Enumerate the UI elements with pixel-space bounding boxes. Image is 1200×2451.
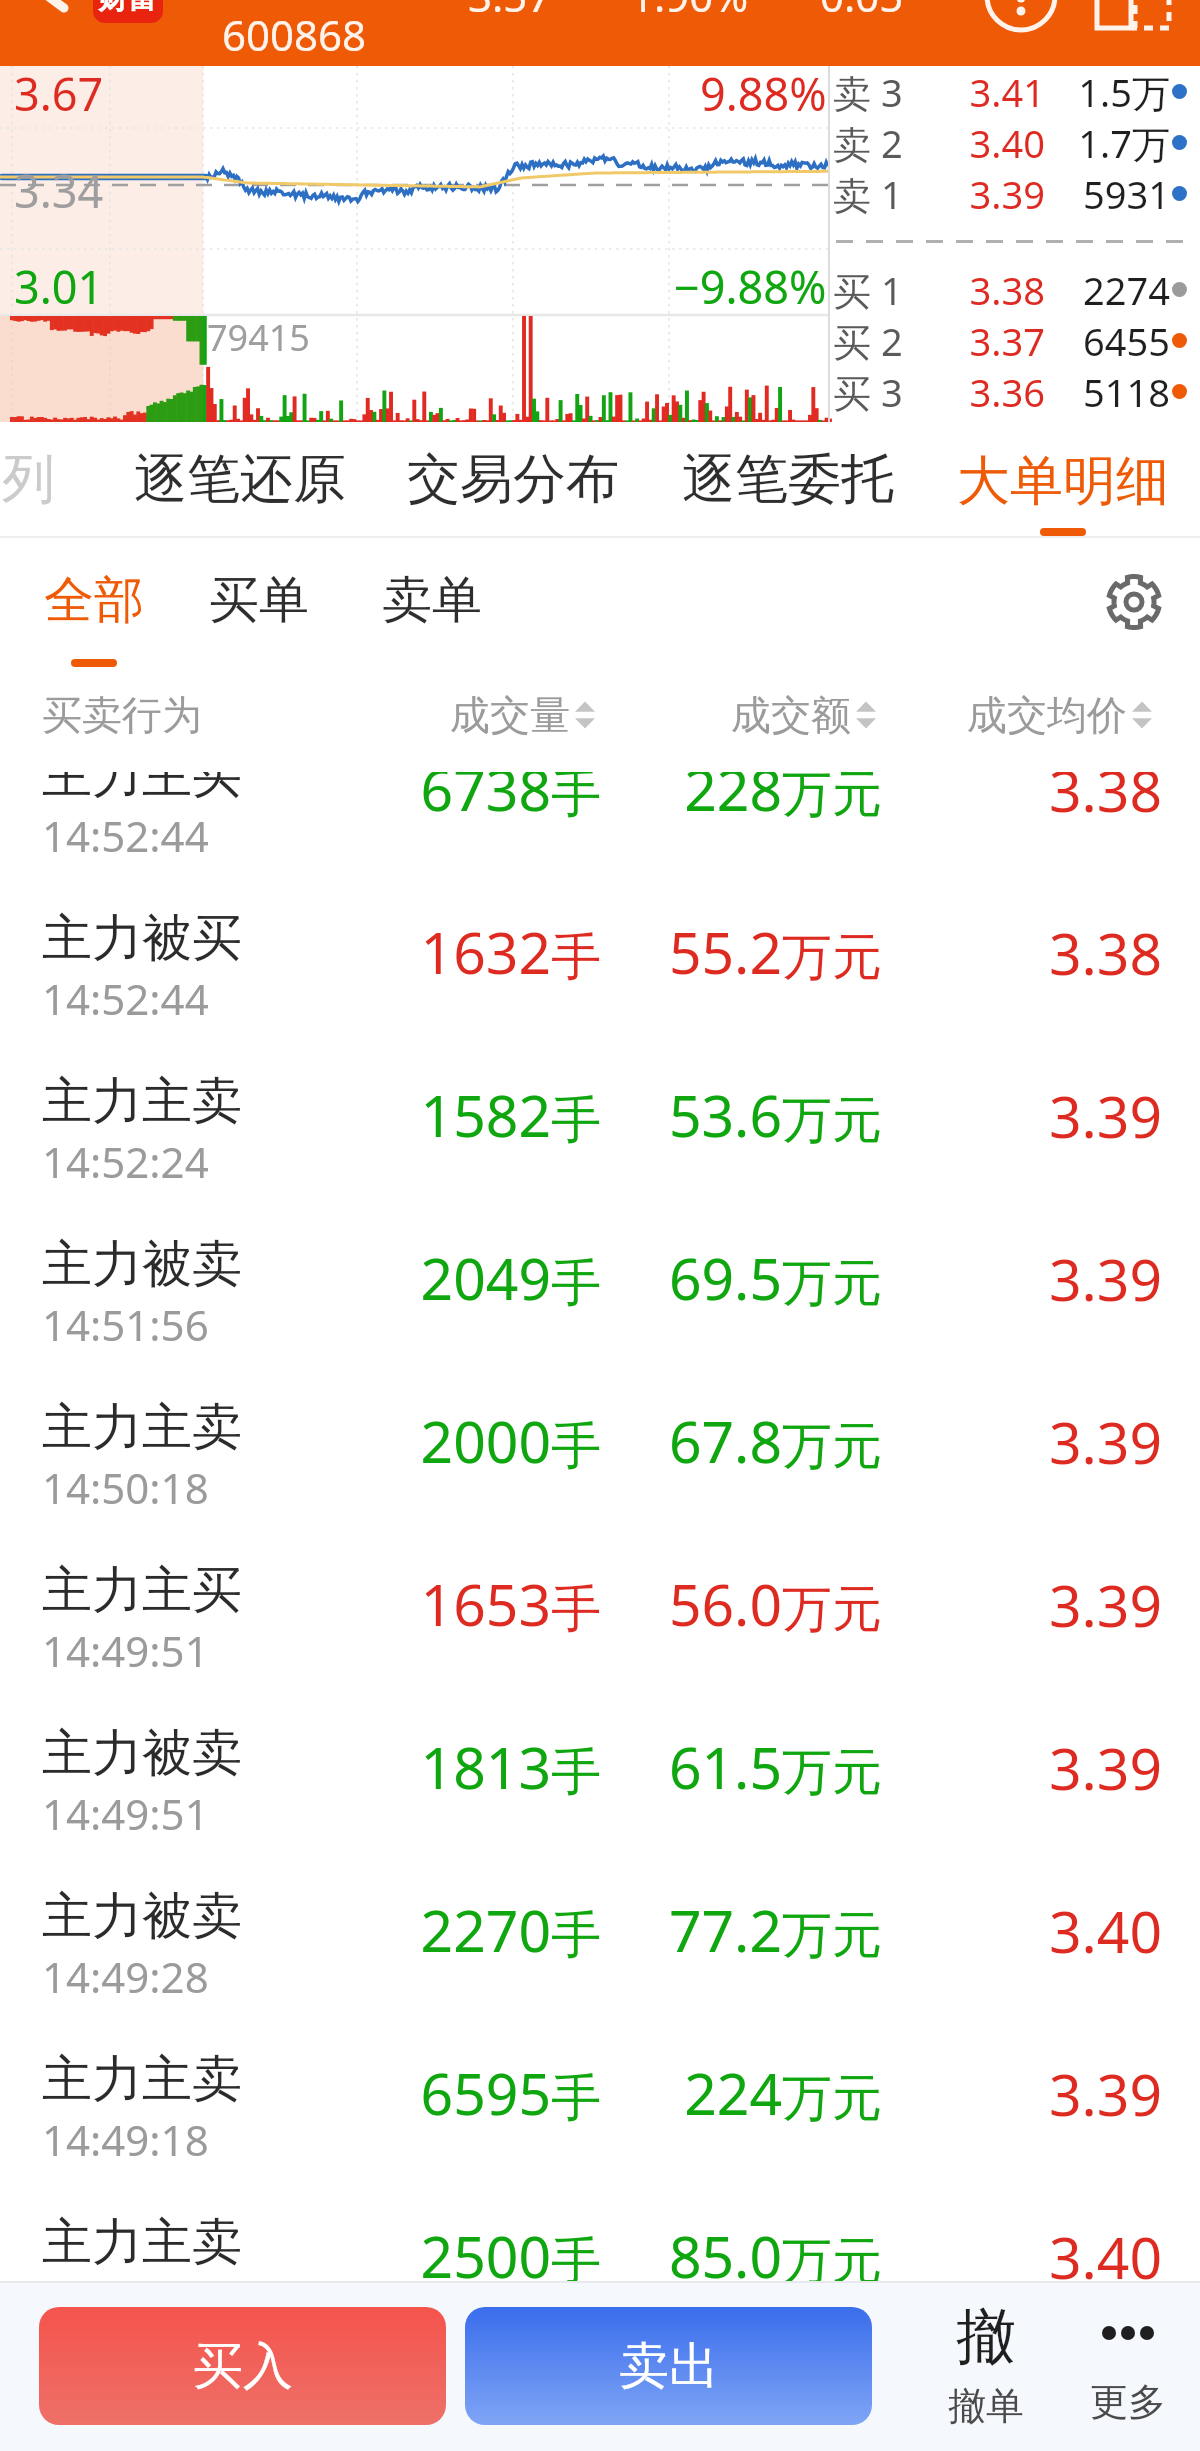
- staticText: 1813手: [341, 1728, 601, 1806]
- button[interactable]: 成交量: [450, 680, 595, 750]
- staticText: 3.57: [468, 0, 552, 24]
- staticText: 3.40: [962, 1892, 1162, 1970]
- staticText: 53.6万元: [622, 1076, 882, 1154]
- staticText: 买入: [193, 2335, 293, 2398]
- button[interactable]: 买入: [39, 2307, 446, 2425]
- button[interactable]: 主力主买: [0, 772, 1200, 882]
- staticText: 买 2: [833, 315, 925, 366]
- staticText: 更多: [1090, 2378, 1166, 2426]
- button[interactable]: Back: [30, 0, 72, 20]
- button[interactable]: 逐笔还原: [103, 422, 377, 538]
- button[interactable]: 主力被买: [0, 882, 1200, 1045]
- staticText: 3.01: [14, 256, 104, 317]
- staticText: 卖 2: [833, 117, 925, 168]
- button[interactable]: Settings: [1102, 570, 1166, 634]
- button[interactable]: 卖 2: [828, 117, 1200, 168]
- staticText: 14:49:51: [42, 1622, 209, 1679]
- staticText: 撤: [956, 2299, 1016, 2375]
- staticText: 撤单: [948, 2382, 1024, 2430]
- staticText: 全部: [44, 569, 144, 632]
- staticText: 5931: [1045, 168, 1170, 219]
- button[interactable]: 卖 1: [828, 168, 1200, 219]
- staticText: 1.5万: [1045, 66, 1170, 117]
- staticText: 买 3: [833, 366, 925, 417]
- staticText: 1.7万: [1045, 117, 1170, 168]
- button[interactable]: 主力被卖: [0, 1860, 1200, 2023]
- staticText: 14:49:28: [42, 1948, 209, 2005]
- staticText: 3.39: [962, 1077, 1162, 1155]
- button[interactable]: 全部: [36, 556, 152, 666]
- staticText: 14:52:24: [42, 1133, 209, 1190]
- staticText: 3.39: [962, 2055, 1162, 2133]
- staticText: 3.41: [925, 66, 1045, 117]
- button[interactable]: 买单: [205, 538, 313, 663]
- button[interactable]: Switch layout: [1095, 0, 1171, 30]
- staticText: 主力被卖: [42, 1722, 242, 1785]
- staticText: 成交量: [450, 690, 570, 740]
- staticText: 卖出: [619, 2335, 719, 2398]
- staticText: 14:50:18: [42, 1459, 209, 1516]
- button[interactable]: More: [985, 0, 1057, 26]
- staticText: 228万元: [622, 772, 882, 828]
- staticText: 交易分布: [407, 446, 619, 513]
- staticText: 成交均价: [967, 690, 1127, 740]
- button[interactable]: 买 2: [828, 315, 1200, 366]
- staticText: 56.0万元: [622, 1565, 882, 1643]
- button[interactable]: 成交额: [731, 680, 876, 750]
- button[interactable]: 列: [0, 422, 120, 538]
- button[interactable]: 成交均价: [967, 680, 1152, 750]
- staticText: 1632手: [341, 913, 601, 991]
- staticText: 2000手: [341, 1402, 601, 1480]
- staticText: 85.0万元: [622, 2217, 882, 2281]
- button[interactable]: More: [1052, 2299, 1200, 2426]
- staticText: 3.67: [14, 63, 104, 124]
- staticText: 14:52:44: [42, 970, 209, 1027]
- staticText: 卖单: [382, 569, 482, 632]
- staticText: 3.38: [962, 772, 1162, 829]
- staticText: 3.37: [925, 315, 1045, 366]
- staticText: 1582手: [341, 1076, 601, 1154]
- button[interactable]: 大单明细: [926, 422, 1200, 538]
- staticText: 卖 1: [833, 168, 925, 219]
- button[interactable]: 主力主卖: [0, 1045, 1200, 1208]
- staticText: 主力被卖: [42, 1233, 242, 1296]
- staticText: 14:52:44: [42, 807, 209, 864]
- staticText: 成交额: [731, 690, 851, 740]
- button[interactable]: 买 3: [828, 366, 1200, 417]
- staticText: 主力主卖: [42, 1396, 242, 1459]
- staticText: 逐笔还原: [134, 446, 346, 513]
- staticText: 买单: [209, 569, 309, 632]
- button[interactable]: 主力主卖: [0, 2186, 1200, 2281]
- button[interactable]: 主力被卖: [0, 1697, 1200, 1860]
- staticText: 主力主卖: [42, 2211, 242, 2274]
- staticText: 主力主卖: [42, 1070, 242, 1133]
- staticText: 77.2万元: [622, 1891, 882, 1969]
- button[interactable]: 卖单: [378, 538, 486, 663]
- staticText: 2500手: [341, 2217, 601, 2281]
- button[interactable]: 撤: [910, 2299, 1062, 2430]
- staticText: 67.8万元: [622, 1402, 882, 1480]
- button[interactable]: 主力被卖: [0, 1208, 1200, 1371]
- staticText: 14:49:18: [42, 2111, 209, 2168]
- staticText: 财富: [98, 0, 158, 17]
- staticText: 买卖行为: [42, 690, 202, 740]
- button[interactable]: 卖 3: [828, 66, 1200, 117]
- staticText: 3.39: [962, 1729, 1162, 1807]
- button[interactable]: 主力主卖: [0, 2023, 1200, 2186]
- button[interactable]: 卖出: [465, 2307, 872, 2425]
- button[interactable]: 主力主买: [0, 1534, 1200, 1697]
- staticText: 大单明细: [957, 448, 1169, 515]
- staticText: 主力主买: [42, 772, 242, 807]
- button[interactable]: 财富: [93, 0, 163, 23]
- staticText: 14:49:51: [42, 1785, 209, 1842]
- staticText: 卖 3: [833, 66, 925, 117]
- button[interactable]: 逐笔委托: [651, 422, 925, 538]
- staticText: 主力主卖: [42, 2048, 242, 2111]
- staticText: 3.39: [962, 1403, 1162, 1481]
- staticText: 14:51:56: [42, 1296, 209, 1353]
- button[interactable]: 交易分布: [376, 422, 650, 538]
- staticText: 3.34: [14, 160, 104, 221]
- button[interactable]: 买 1: [828, 264, 1200, 315]
- button[interactable]: 主力主卖: [0, 1371, 1200, 1534]
